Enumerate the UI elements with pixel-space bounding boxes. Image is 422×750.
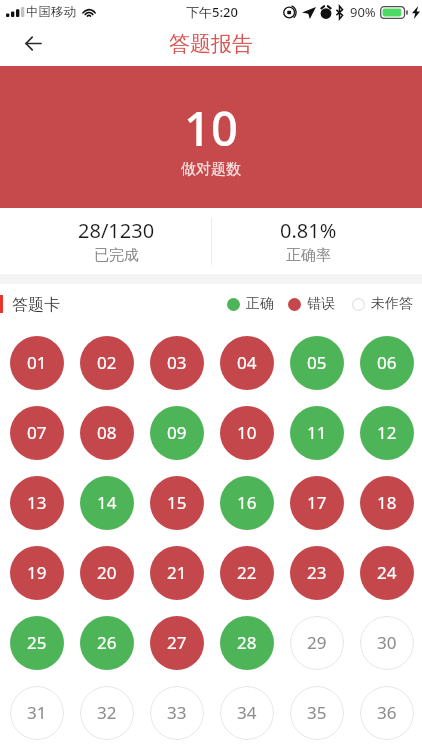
staticText: 36 (377, 701, 397, 724)
staticText: 21 (167, 561, 187, 584)
button[interactable]: Back (0, 24, 56, 66)
staticText: 做对题数 (181, 160, 241, 179)
button[interactable]: 34 (220, 686, 274, 740)
staticText: 10 (237, 421, 257, 444)
button[interactable]: 04 (220, 336, 274, 390)
button[interactable]: 25 (10, 616, 64, 670)
staticText: 已完成 (94, 246, 139, 265)
button[interactable]: 未作答 (352, 295, 413, 313)
staticText: 06 (377, 351, 397, 374)
staticText: 28 (237, 631, 257, 654)
staticText: 15 (167, 491, 187, 514)
staticText: 90% (350, 3, 376, 21)
staticText: 01 (27, 351, 47, 374)
staticText: 30 (377, 631, 397, 654)
staticText: 25 (27, 631, 47, 654)
staticText: 23 (307, 561, 327, 584)
staticText: 26 (97, 631, 117, 654)
button[interactable]: 15 (150, 476, 204, 530)
staticText: 28/1230 (78, 217, 155, 244)
staticText: 07 (27, 421, 47, 444)
staticText: 20 (97, 561, 117, 584)
staticText: 未作答 (371, 295, 413, 313)
button[interactable]: 19 (10, 546, 64, 600)
staticText: 答题报告 (169, 31, 253, 57)
button[interactable]: 05 (290, 336, 344, 390)
button[interactable]: 17 (290, 476, 344, 530)
staticText: 27 (167, 631, 187, 654)
staticText: 31 (27, 701, 47, 724)
button[interactable]: 16 (220, 476, 274, 530)
button[interactable]: 35 (290, 686, 344, 740)
button[interactable]: 32 (80, 686, 134, 740)
button[interactable]: 10 (220, 406, 274, 460)
staticText: 中国移动 (26, 4, 76, 20)
staticText: 34 (237, 701, 257, 724)
staticText: 09 (167, 421, 187, 444)
staticText: 32 (97, 701, 117, 724)
staticText: 04 (237, 351, 257, 374)
button[interactable]: 正确 (227, 295, 274, 313)
button[interactable]: 31 (10, 686, 64, 740)
button[interactable]: 18 (360, 476, 414, 530)
button[interactable]: 12 (360, 406, 414, 460)
staticText: 正确率 (286, 246, 331, 265)
staticText: 18 (377, 491, 397, 514)
button[interactable]: 09 (150, 406, 204, 460)
staticText: 错误 (307, 295, 335, 313)
staticText: 14 (97, 491, 117, 514)
button[interactable]: 错误 (288, 295, 335, 313)
staticText: 02 (97, 351, 117, 374)
button[interactable]: 30 (360, 616, 414, 670)
staticText: 05 (307, 351, 327, 374)
button[interactable]: 01 (10, 336, 64, 390)
staticText: 35 (307, 701, 327, 724)
button[interactable]: 06 (360, 336, 414, 390)
button[interactable]: 08 (80, 406, 134, 460)
staticText: 正确 (246, 295, 274, 313)
button[interactable]: 14 (80, 476, 134, 530)
staticText: 11 (307, 421, 327, 444)
staticText: 下午5:20 (186, 3, 238, 21)
staticText: 33 (167, 701, 187, 724)
button[interactable]: 23 (290, 546, 344, 600)
staticText: 03 (167, 351, 187, 374)
staticText: 17 (307, 491, 327, 514)
button[interactable]: 07 (10, 406, 64, 460)
button[interactable]: 33 (150, 686, 204, 740)
button[interactable]: 02 (80, 336, 134, 390)
staticText: 0.81% (280, 217, 337, 244)
button[interactable]: 20 (80, 546, 134, 600)
staticText: 22 (237, 561, 257, 584)
staticText: 29 (307, 631, 327, 654)
button[interactable]: 24 (360, 546, 414, 600)
button[interactable]: 21 (150, 546, 204, 600)
staticText: 13 (27, 491, 47, 514)
button[interactable]: 26 (80, 616, 134, 670)
staticText: 16 (237, 491, 257, 514)
staticText: 12 (377, 421, 397, 444)
button[interactable]: 28 (220, 616, 274, 670)
button[interactable]: 11 (290, 406, 344, 460)
staticText: 24 (377, 561, 397, 584)
button[interactable]: 13 (10, 476, 64, 530)
staticText: 答题卡 (12, 295, 60, 315)
button[interactable]: 27 (150, 616, 204, 670)
staticText: 10 (184, 96, 238, 160)
button[interactable]: 03 (150, 336, 204, 390)
button[interactable]: 29 (290, 616, 344, 670)
button[interactable]: 22 (220, 546, 274, 600)
staticText: 08 (97, 421, 117, 444)
staticText: 19 (27, 561, 47, 584)
button[interactable]: 36 (360, 686, 414, 740)
